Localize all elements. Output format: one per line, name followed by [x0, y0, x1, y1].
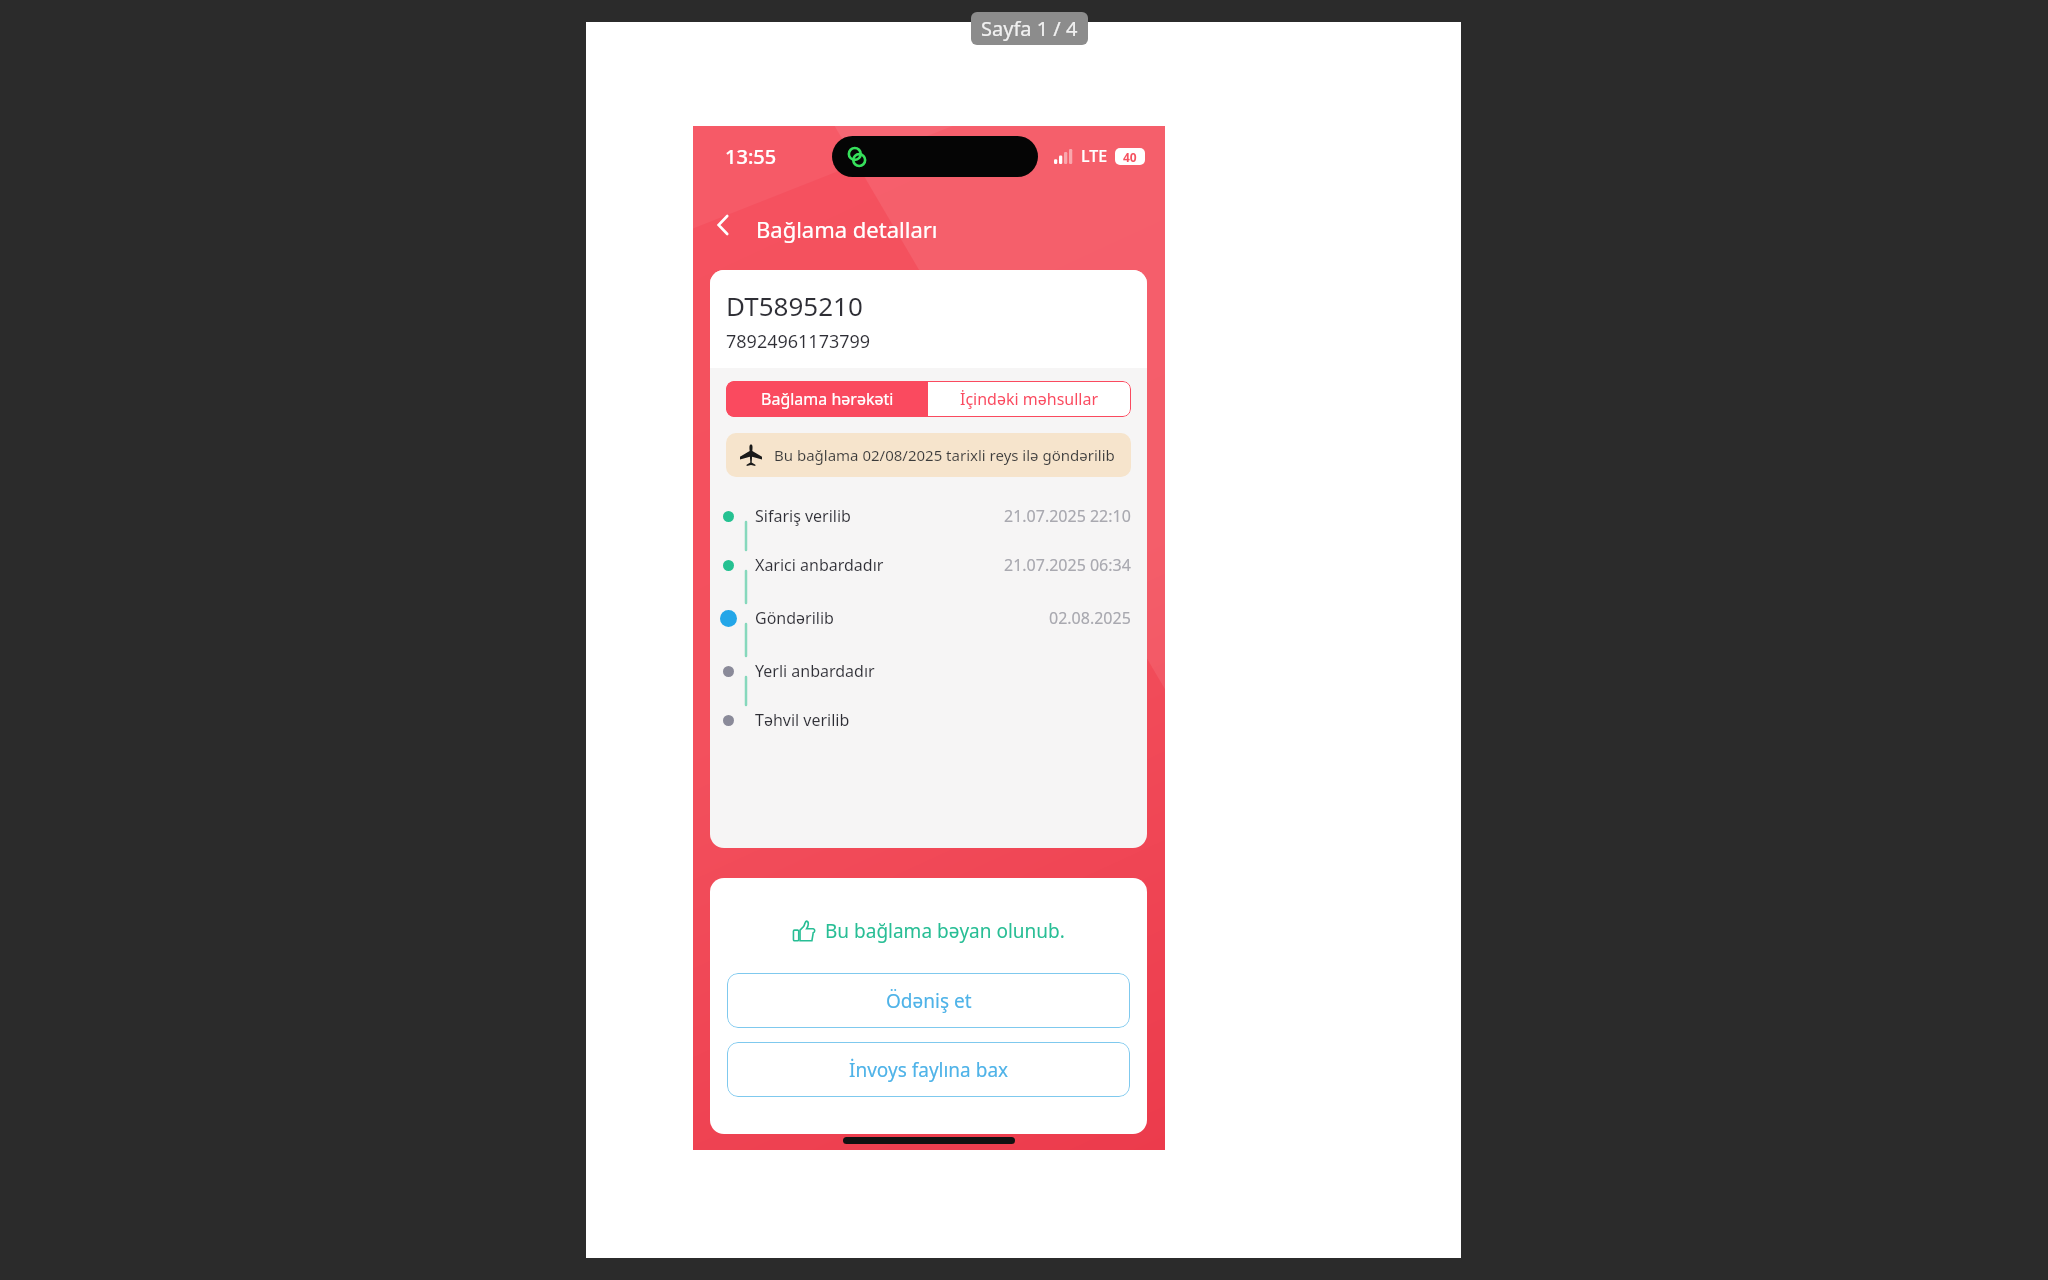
button[interactable]: İnvoys faylına bax: [727, 1042, 1130, 1097]
staticText: Xarici anbardadır: [755, 554, 884, 576]
button[interactable]: Göndərilib: [710, 607, 1147, 629]
staticText: 21.07.2025 06:34: [1004, 554, 1131, 576]
staticText: Bağlama detalları: [756, 214, 938, 244]
staticText: Sayfa 1 / 4: [981, 15, 1078, 42]
staticText: Ödəniş et: [886, 988, 972, 1014]
staticText: İnvoys faylına bax: [849, 1057, 1009, 1083]
staticText: Göndərilib: [755, 607, 834, 629]
button[interactable]: Back: [707, 208, 741, 242]
button[interactable]: Xarici anbardadır: [710, 554, 1147, 576]
staticText: 02.08.2025: [1049, 607, 1131, 629]
staticText: Bağlama hərəkəti: [761, 388, 894, 410]
staticText: LTE: [1081, 145, 1108, 167]
staticText: Təhvil verilib: [755, 709, 850, 731]
button[interactable]: Təhvil verilib: [710, 709, 1147, 731]
staticText: İçindəki məhsullar: [960, 388, 1099, 410]
staticText: 78924961173799: [726, 329, 871, 354]
button[interactable]: Bağlama hərəkəti: [726, 381, 928, 417]
staticText: 21.07.2025 22:10: [1004, 505, 1131, 527]
button[interactable]: Yerli anbardadır: [710, 660, 1147, 682]
staticText: Yerli anbardadır: [755, 660, 875, 682]
staticText: Sifariş verilib: [755, 505, 851, 527]
button[interactable]: İçindəki məhsullar: [928, 381, 1131, 417]
button[interactable]: Ödəniş et: [727, 973, 1130, 1028]
button[interactable]: Sifariş verilib: [710, 505, 1147, 527]
staticText: 13:55: [725, 143, 777, 170]
staticText: Bu bağlama bəyan olunub.: [825, 918, 1065, 944]
staticText: DT5895210: [726, 288, 863, 323]
staticText: Bu bağlama 02/08/2025 tarixli reys ilə g…: [774, 445, 1115, 465]
staticText: 40: [1123, 149, 1137, 165]
